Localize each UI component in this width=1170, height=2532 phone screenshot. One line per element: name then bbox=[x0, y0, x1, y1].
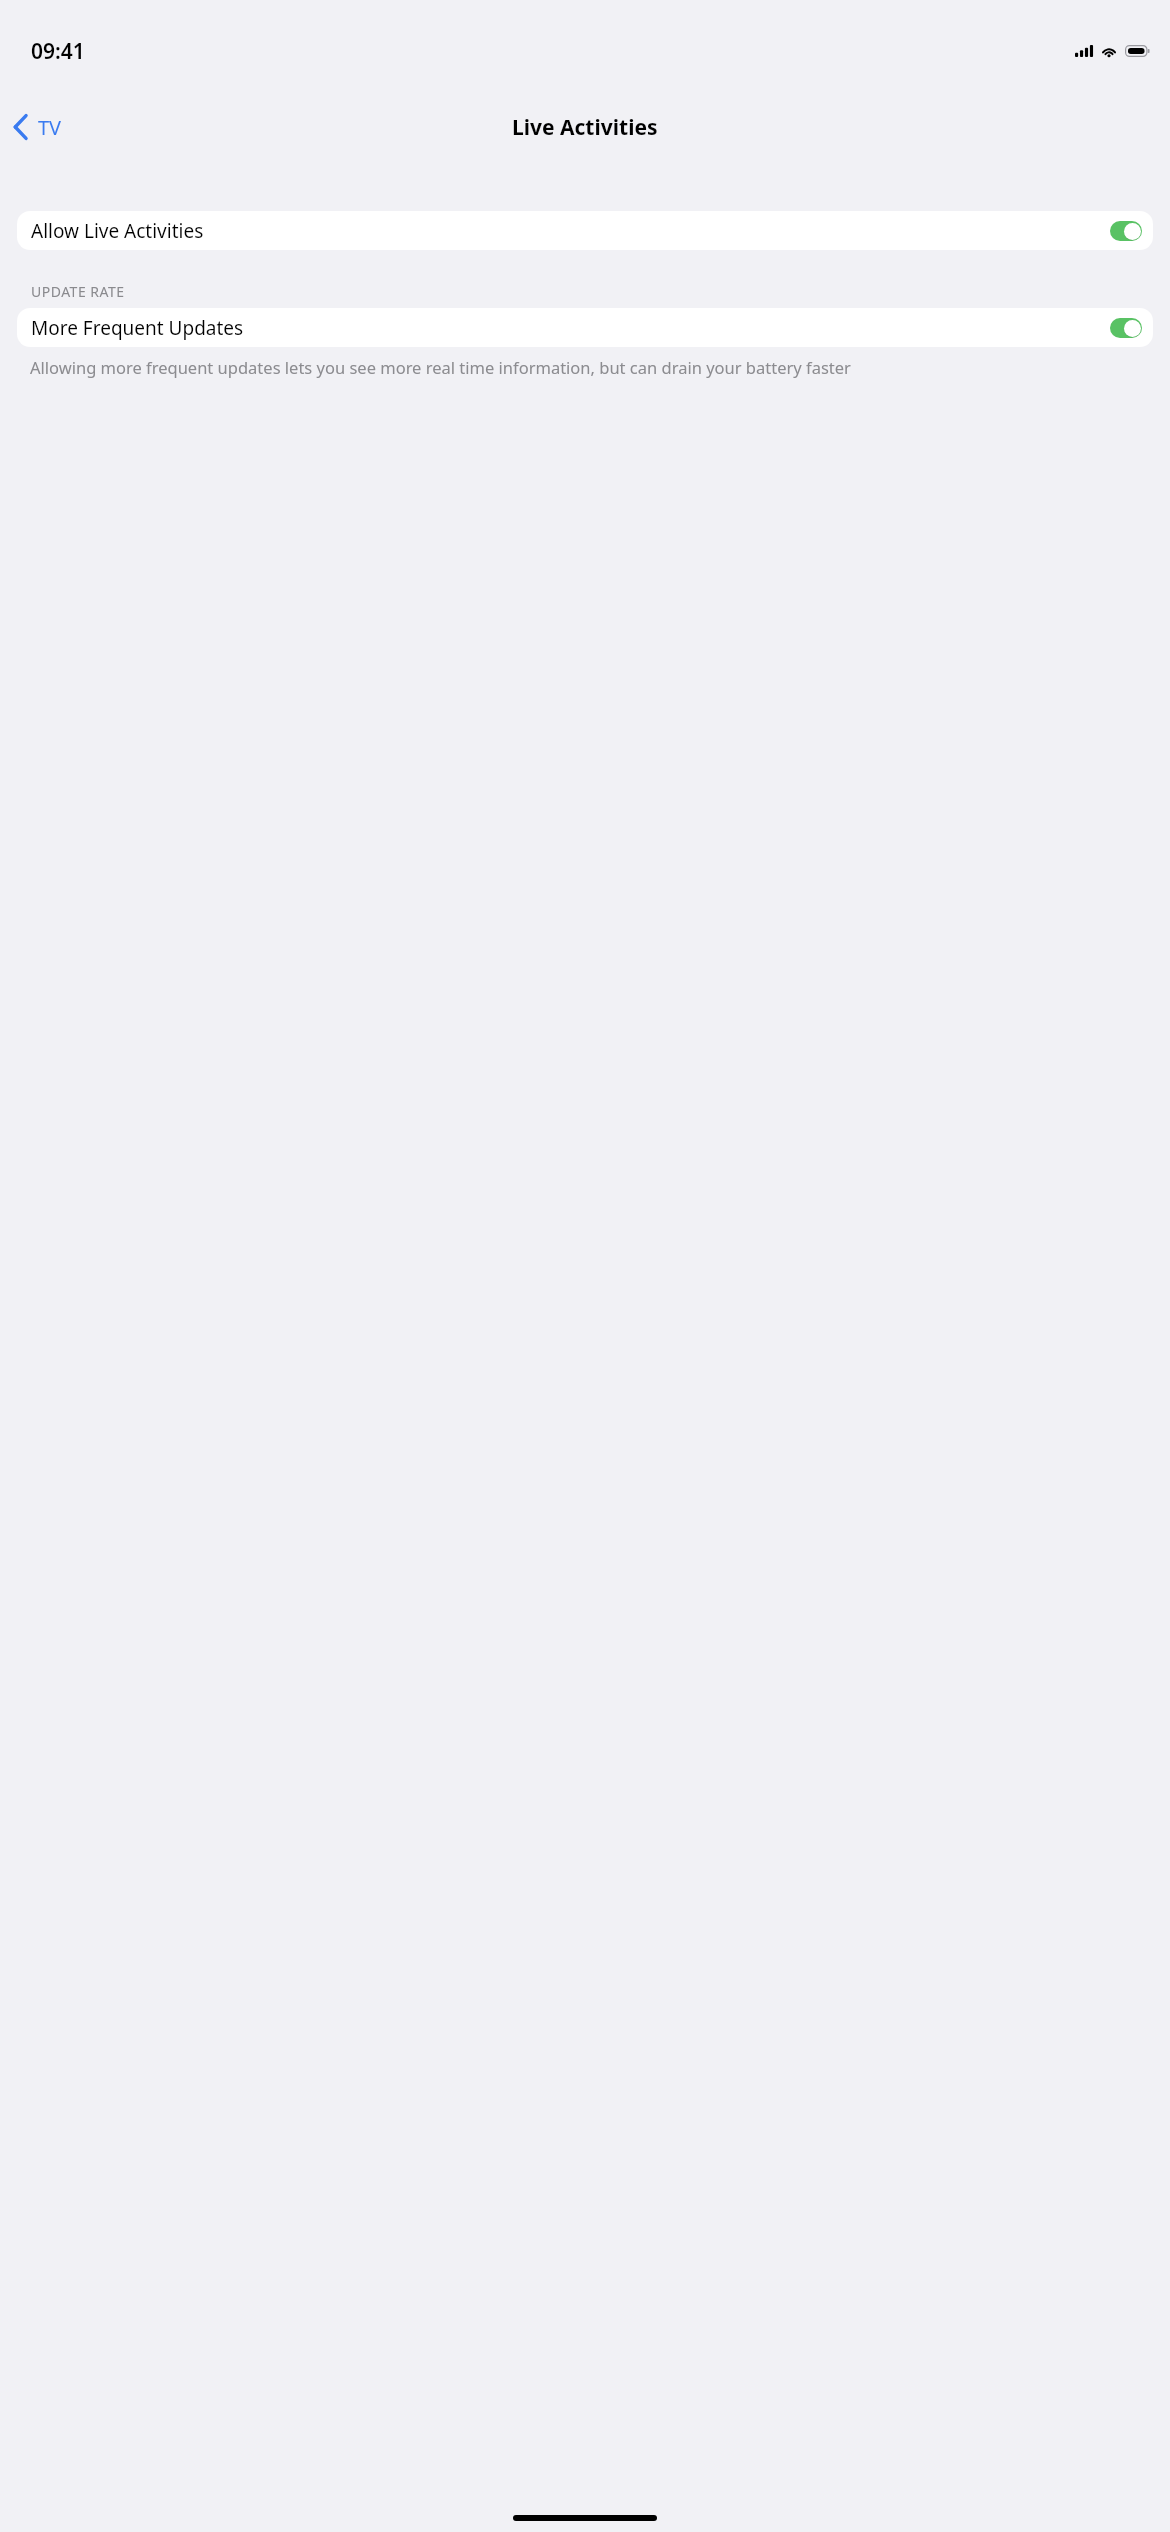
staticText: More Frequent Updates bbox=[31, 315, 1110, 341]
staticText: UPDATE RATE bbox=[31, 282, 125, 301]
staticText: TV bbox=[38, 114, 62, 141]
button[interactable]: Allow Live Activities bbox=[17, 211, 1153, 250]
button[interactable]: More Frequent Updates bbox=[17, 308, 1153, 347]
staticText: 09:41 bbox=[31, 37, 85, 66]
button[interactable]: Toggle on bbox=[1110, 318, 1142, 338]
button[interactable]: Toggle on bbox=[1110, 221, 1142, 241]
button[interactable]: TV bbox=[6, 108, 68, 146]
staticText: Allowing more frequent updates lets you … bbox=[30, 356, 851, 378]
staticText: Live Activities bbox=[512, 113, 658, 142]
staticText: Allow Live Activities bbox=[31, 218, 1110, 244]
